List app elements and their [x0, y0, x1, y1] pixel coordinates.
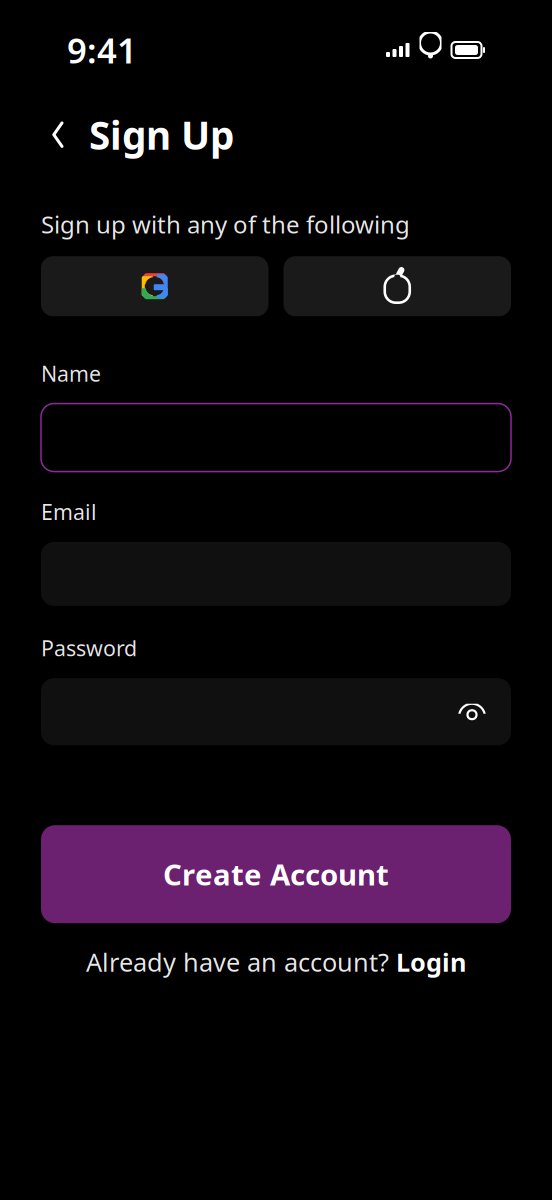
staticText: Already have an account?	[86, 945, 389, 979]
button[interactable]: Sign up with Google	[41, 256, 268, 316]
staticText: 9:41	[67, 27, 137, 73]
button[interactable]: Already have an account?	[86, 945, 466, 979]
button[interactable]: Back	[41, 115, 75, 155]
staticText: Password	[41, 634, 137, 662]
button[interactable]: Create Account	[41, 825, 511, 923]
staticText: Sign up with any of the following	[41, 208, 410, 240]
staticText: Login	[396, 945, 466, 979]
button[interactable]: Sign up with Apple	[283, 256, 511, 316]
staticText: Name	[41, 359, 101, 387]
staticText: Create Account	[163, 855, 389, 894]
staticText: Email	[41, 497, 97, 526]
button[interactable]: Name field	[41, 403, 511, 471]
staticText: Sign Up	[89, 109, 234, 160]
button[interactable]: Password field	[41, 678, 511, 745]
